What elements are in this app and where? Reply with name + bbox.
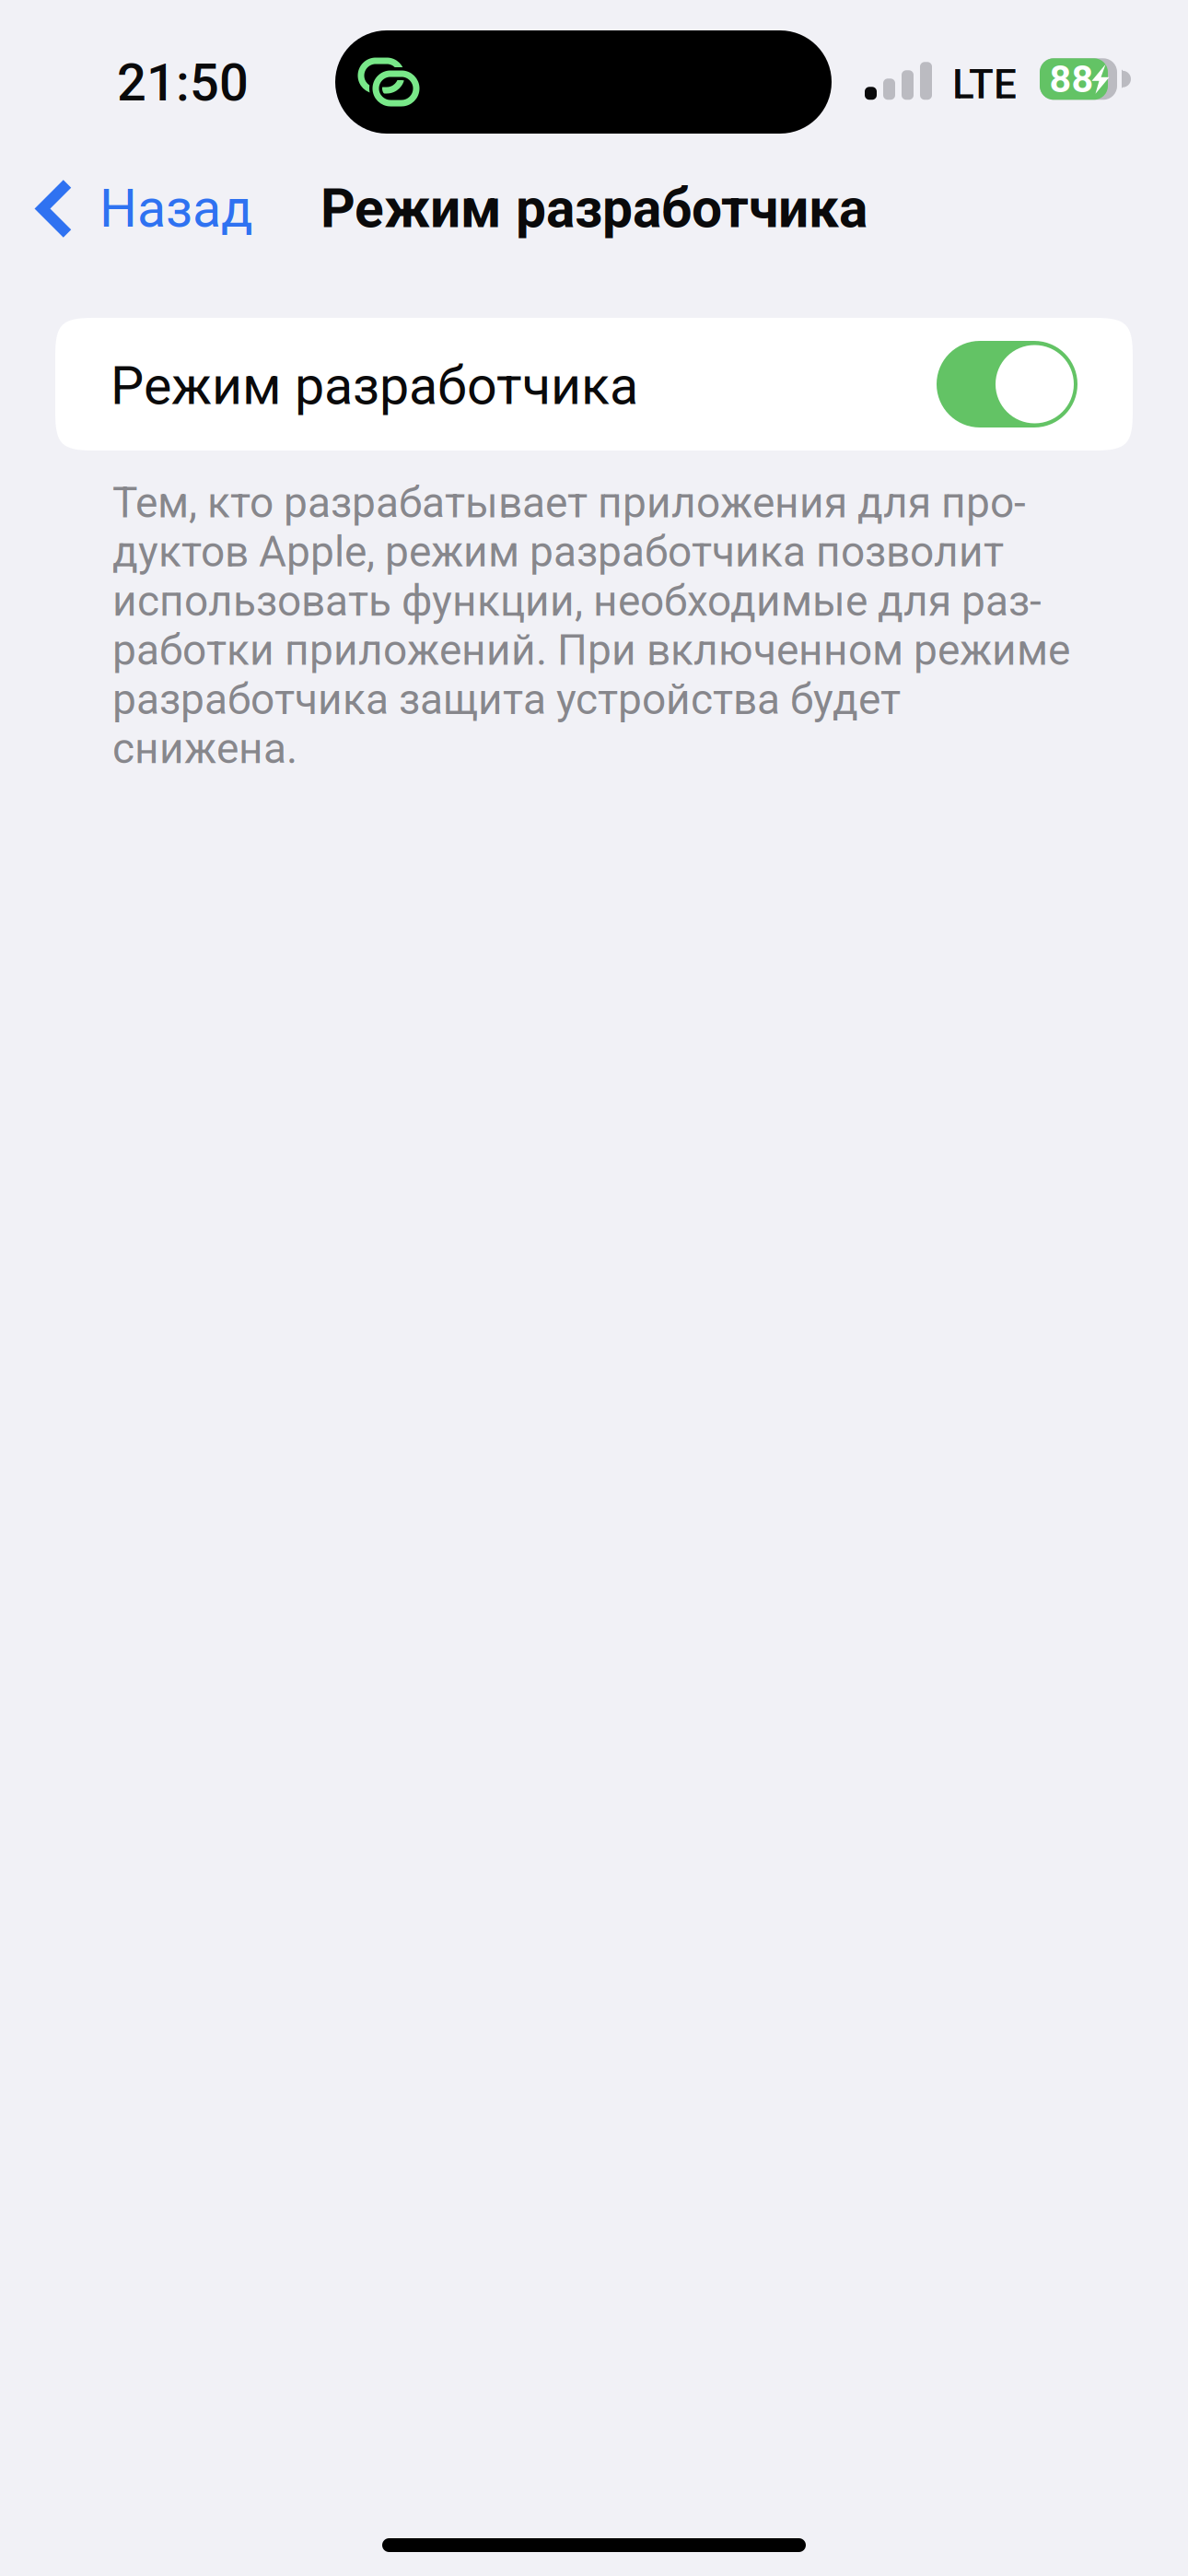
button[interactable]: Режим разработчика — [55, 318, 1133, 451]
button[interactable]: Назад — [0, 163, 275, 255]
staticText: 21:50 — [117, 53, 249, 113]
staticText: Режим разработчика — [320, 177, 868, 240]
staticText: 88 — [1049, 57, 1094, 101]
button[interactable]: Вкл. — [937, 341, 1077, 427]
staticText: Режим разработчика — [111, 355, 638, 417]
staticText: Назад — [99, 178, 253, 240]
staticText: Тем, кто разрабатывает приложения для пр… — [112, 478, 1070, 773]
staticText: LTE — [952, 61, 1017, 108]
